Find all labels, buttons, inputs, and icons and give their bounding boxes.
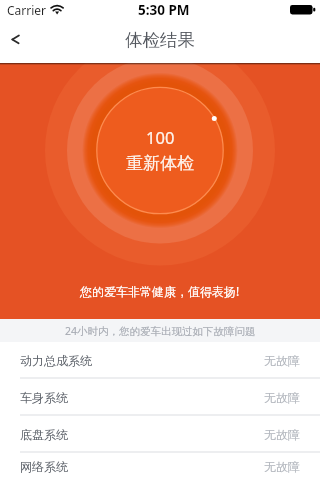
- staticText: 24小时内，您的爱车出现过如下故障问题: [65, 324, 256, 338]
- staticText: 无故障: [264, 353, 300, 368]
- button[interactable]: 动力总成系统: [0, 342, 320, 379]
- staticText: 无故障: [264, 390, 300, 405]
- staticText: 5:30 PM: [138, 1, 190, 19]
- button[interactable]: 底盘系统: [0, 416, 320, 453]
- staticText: 无故障: [264, 459, 300, 474]
- button[interactable]: Back: [0, 20, 34, 58]
- staticText: 100: [146, 126, 175, 148]
- staticText: 体检结果: [125, 29, 195, 51]
- staticText: Carrier: [7, 2, 47, 18]
- button[interactable]: 车身系统: [0, 379, 320, 416]
- staticText: 您的爱车非常健康，值得表扬!: [80, 283, 240, 299]
- staticText: 重新体检: [126, 153, 194, 174]
- staticText: 网络系统: [20, 459, 68, 474]
- staticText: 底盘系统: [20, 427, 68, 442]
- staticText: 车身系统: [20, 390, 68, 405]
- button[interactable]: 网络系统: [0, 453, 320, 480]
- staticText: 动力总成系统: [20, 353, 92, 368]
- staticText: 无故障: [264, 427, 300, 442]
